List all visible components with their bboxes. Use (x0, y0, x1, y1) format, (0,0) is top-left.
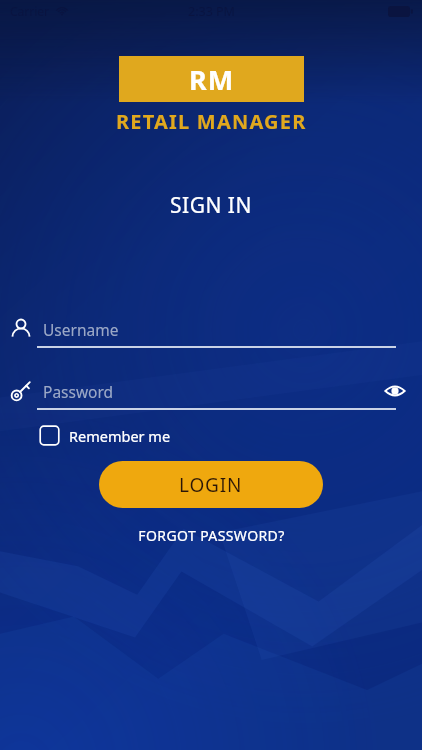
staticText: LOGIN (179, 472, 243, 498)
staticText: Username (43, 319, 119, 340)
staticText: 2:33 PM (188, 3, 235, 20)
staticText: Remember me (69, 426, 171, 446)
staticText: SIGN IN (170, 191, 252, 220)
button[interactable]: Remember me (37, 422, 173, 449)
staticText: RETAIL MANAGER (116, 108, 307, 135)
staticText: RM (189, 61, 235, 98)
other: Password (9, 379, 33, 403)
button[interactable]: FORGOT PASSWORD? (130, 522, 293, 549)
staticText: Password (43, 381, 114, 402)
button[interactable]: LOGIN (99, 461, 323, 508)
staticText: FORGOT PASSWORD? (138, 526, 285, 545)
button[interactable]: Show password (378, 374, 412, 408)
button[interactable]: Username (0, 312, 422, 348)
other: Username (9, 317, 33, 341)
button[interactable]: Password (0, 374, 422, 410)
